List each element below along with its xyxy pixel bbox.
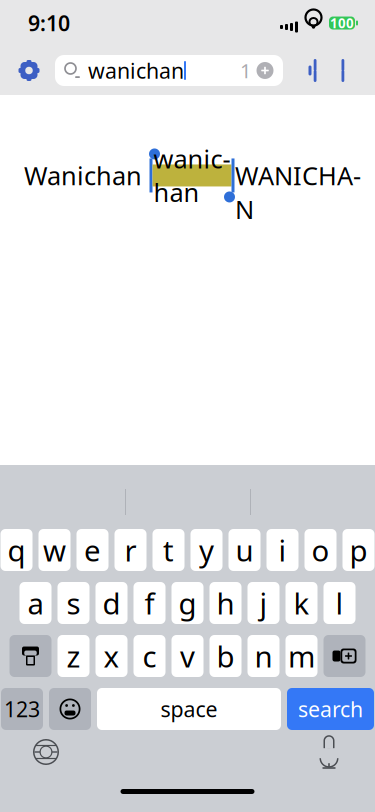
button[interactable]: Clear text — [256, 61, 274, 79]
button[interactable]: Shift — [9, 635, 51, 677]
button[interactable]: b — [209, 635, 241, 677]
staticText: s — [66, 583, 80, 622]
staticText: w — [43, 530, 66, 569]
staticText: f — [144, 583, 154, 622]
button[interactable]: n — [247, 635, 279, 677]
staticText: a — [27, 583, 43, 622]
button[interactable]: c — [133, 635, 165, 677]
staticText: b — [216, 636, 234, 675]
button[interactable]: v — [171, 635, 203, 677]
button[interactable]: Delete — [323, 635, 365, 677]
staticText: t — [163, 530, 174, 569]
button[interactable]: z — [57, 635, 89, 677]
button[interactable]: search — [287, 688, 374, 730]
staticText: z — [66, 636, 80, 675]
button[interactable]: j — [247, 582, 279, 624]
staticText: v — [180, 636, 195, 675]
button[interactable]: e — [76, 529, 108, 571]
button[interactable]: w — [38, 529, 70, 571]
staticText: space — [160, 695, 217, 723]
staticText: q — [7, 530, 25, 569]
staticText: c — [142, 636, 156, 675]
staticText: 1 — [240, 57, 251, 84]
button[interactable]: r — [114, 529, 146, 571]
button[interactable]: u — [228, 529, 260, 571]
staticText: search — [298, 695, 363, 723]
staticText: Wanichan — [24, 159, 149, 192]
button[interactable]: d — [95, 582, 127, 624]
button[interactable]: t — [152, 529, 184, 571]
button[interactable]: y — [190, 529, 222, 571]
button[interactable]: Previous match — [295, 53, 325, 87]
staticText: e — [84, 530, 101, 569]
button[interactable]: p — [342, 529, 374, 571]
staticText: r — [124, 530, 136, 569]
staticText: n — [254, 636, 272, 675]
staticText: m — [288, 636, 315, 675]
staticText: 100 — [330, 14, 354, 32]
button[interactable]: x — [95, 635, 127, 677]
staticText: j — [259, 583, 267, 622]
button[interactable]: f — [133, 582, 165, 624]
button[interactable]: Settings — [13, 53, 45, 87]
button[interactable]: g — [171, 582, 203, 624]
button[interactable]: space — [97, 688, 281, 730]
button[interactable]: a — [19, 582, 51, 624]
staticText: u — [235, 530, 253, 569]
staticText: i — [278, 530, 286, 569]
staticText: l — [335, 583, 343, 622]
button[interactable]: m — [285, 635, 317, 677]
staticText: h — [216, 583, 234, 622]
button[interactable]: l — [323, 582, 355, 624]
button[interactable]: i — [266, 529, 298, 571]
button[interactable]: q — [0, 529, 32, 571]
button[interactable]: s — [57, 582, 89, 624]
staticText: g — [178, 583, 196, 622]
staticText: y — [199, 530, 214, 569]
button[interactable]: k — [285, 582, 317, 624]
button[interactable]: Switch keyboard — [26, 735, 66, 769]
staticText: 123 — [4, 695, 40, 723]
staticText: o — [311, 530, 329, 569]
staticText: WANICHAN — [235, 125, 361, 226]
staticText: p — [349, 530, 367, 569]
staticText: x — [103, 636, 119, 675]
button[interactable]: o — [304, 529, 336, 571]
button[interactable]: Dictation — [309, 735, 349, 769]
staticText: wanichan — [153, 142, 230, 209]
staticText: d — [102, 583, 120, 622]
staticText: wanichan — [88, 56, 184, 85]
button[interactable]: h — [209, 582, 241, 624]
staticText: k — [293, 583, 309, 622]
staticText: 9:10 — [28, 9, 70, 37]
button[interactable]: Emoji keyboard — [49, 688, 91, 730]
button[interactable]: 123 — [1, 688, 43, 730]
button[interactable]: Next match — [333, 53, 363, 87]
